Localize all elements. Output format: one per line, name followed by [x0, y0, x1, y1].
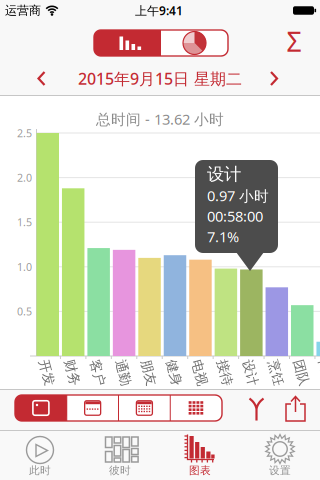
button[interactable]: 饼图 [161, 30, 228, 56]
button[interactable]: 柱状图 [94, 30, 161, 56]
staticText: 00:58:00 [207, 206, 263, 226]
button[interactable]: 总计 [279, 25, 309, 57]
button[interactable]: 分享 [280, 392, 310, 426]
staticText: 接待 [212, 364, 238, 381]
button[interactable]: 年视图 [170, 395, 222, 421]
button[interactable]: 月视图 [118, 395, 170, 421]
staticText: 2.0 [17, 170, 32, 185]
staticText: 设计 [237, 364, 263, 381]
staticText: 设置 [269, 464, 291, 477]
staticText: 总时间 - 13.62 小时 [96, 109, 224, 129]
button[interactable]: 日视图 [15, 395, 67, 421]
staticText: 上午9:41 [135, 2, 183, 18]
button[interactable]: 设置 [240, 430, 320, 480]
button[interactable]: 后一天 [259, 63, 289, 93]
staticText: 2015年9月15日 星期二 [78, 68, 242, 89]
staticText: 7.1% [207, 227, 239, 246]
staticText: 通勤 [110, 364, 136, 381]
staticText: 团队 [288, 364, 314, 381]
staticText: 客户 [85, 364, 111, 381]
staticText: 0.97 小时 [207, 186, 269, 205]
staticText: 健身 [161, 364, 187, 381]
staticText: 图表 [189, 464, 211, 477]
staticText: 财务 [59, 364, 85, 381]
staticText: 0.5 [17, 304, 32, 318]
button[interactable]: 图表 [160, 430, 240, 480]
staticText: 烹饪 [263, 364, 289, 381]
button[interactable]: 前一天 [26, 63, 56, 93]
staticText: Σ [286, 24, 301, 59]
staticText: 2.5 [17, 126, 32, 140]
staticText: 电视 [186, 364, 212, 381]
staticText: 1.0 [17, 260, 32, 274]
staticText: 此时 [29, 464, 51, 477]
button[interactable]: 筛选 [239, 392, 273, 426]
button[interactable]: 周视图 [67, 395, 119, 421]
staticText: 朋友 [136, 364, 162, 381]
button[interactable]: 彼时 [80, 430, 160, 480]
staticText: 运营商 [5, 3, 41, 18]
staticText: 1.5 [17, 215, 32, 229]
staticText: 彼时 [109, 464, 131, 477]
staticText: 设计 [207, 164, 241, 185]
staticText: 开发 [34, 364, 60, 381]
button[interactable]: 此时 [0, 430, 80, 480]
